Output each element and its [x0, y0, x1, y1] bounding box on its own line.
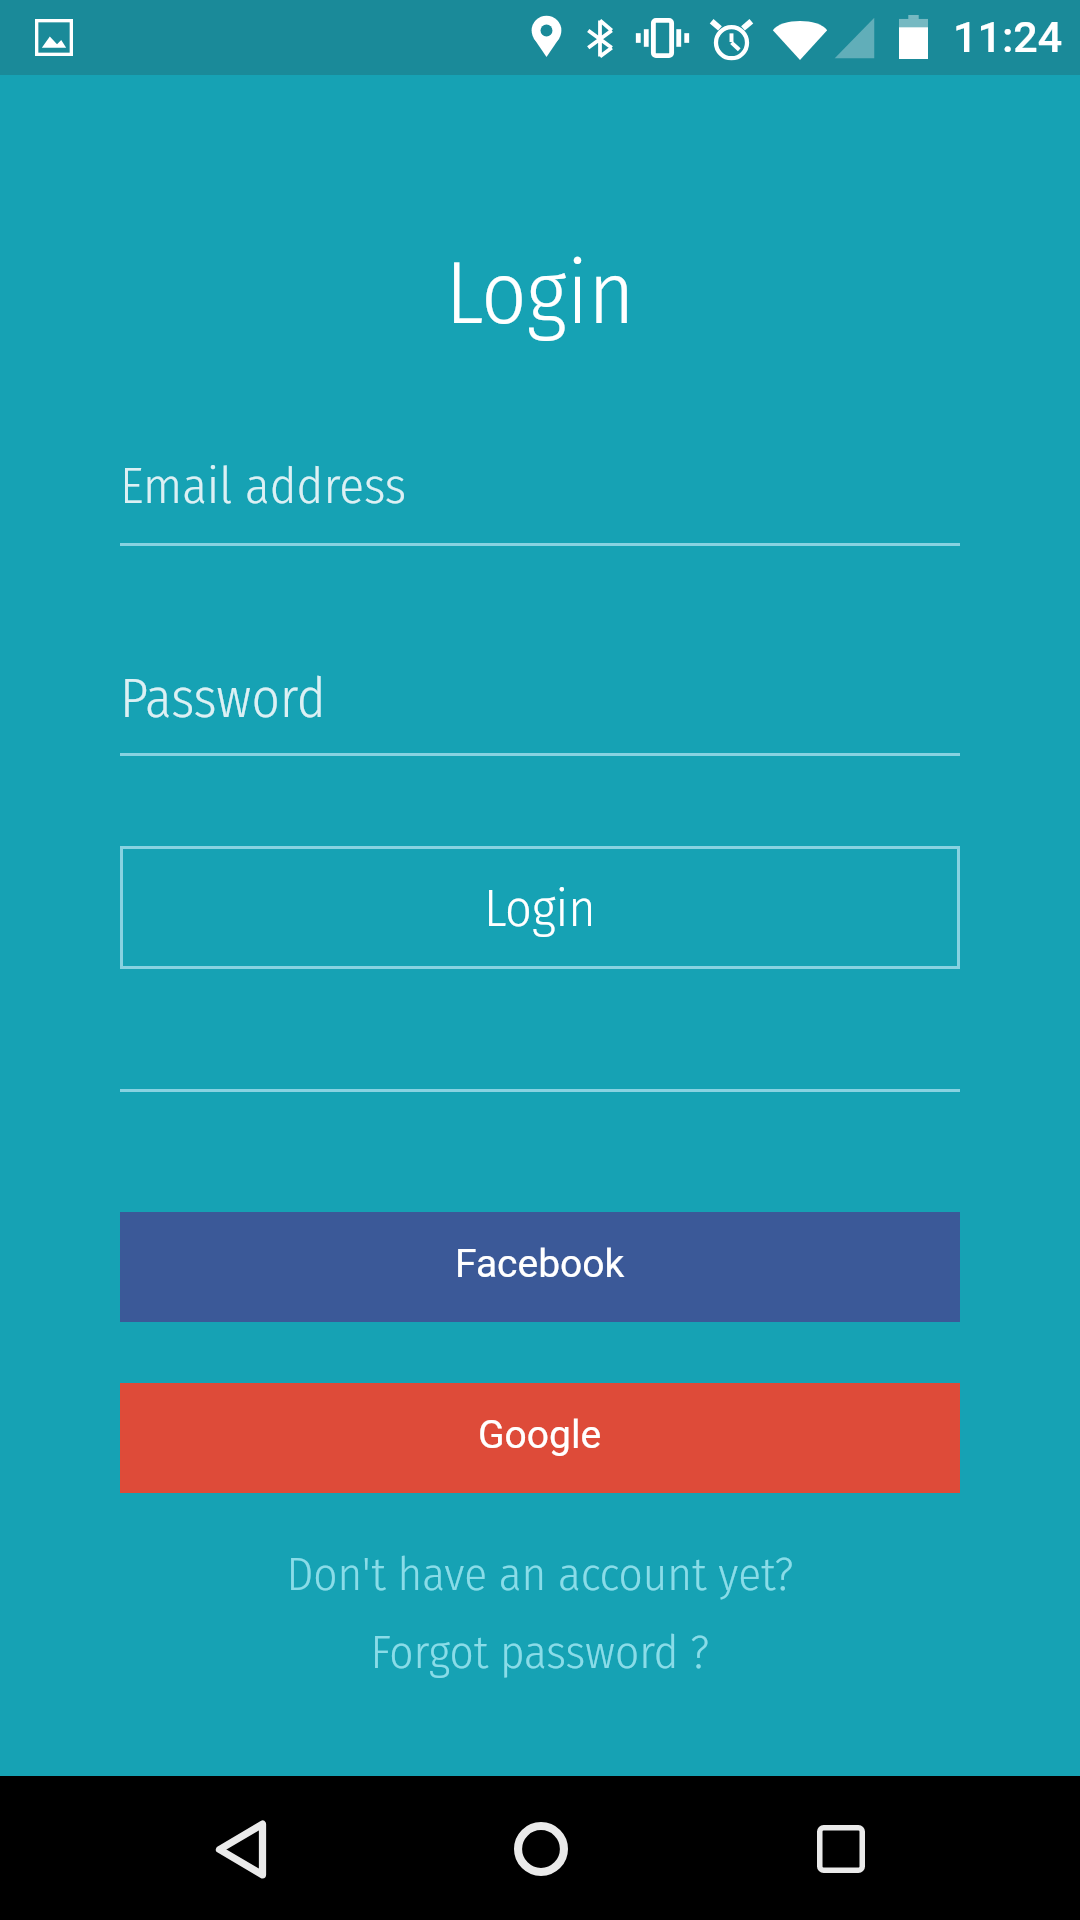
button[interactable]: Recents — [781, 1801, 901, 1897]
button[interactable]: Forgot password ? — [0, 1624, 1080, 1680]
button[interactable]: Password — [120, 626, 960, 759]
button[interactable]: Email address — [120, 415, 960, 549]
staticText: Facebook — [455, 1241, 625, 1287]
button[interactable]: Back — [181, 1801, 301, 1897]
button[interactable]: Facebook — [120, 1212, 960, 1322]
staticText: Login — [0, 241, 1080, 347]
staticText: Login — [484, 877, 596, 939]
button[interactable]: Google — [120, 1383, 960, 1493]
button[interactable]: Don't have an account yet? — [0, 1546, 1080, 1602]
button[interactable]: Home — [481, 1801, 601, 1897]
staticText: Password — [120, 666, 326, 732]
staticText: 11:24 — [953, 12, 1063, 62]
staticText: Google — [478, 1412, 602, 1458]
staticText: Email address — [120, 455, 407, 516]
button[interactable]: Login — [120, 846, 960, 969]
